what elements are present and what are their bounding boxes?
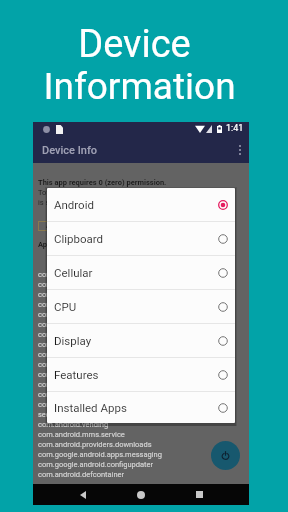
staticText: com.android.externalstorage: [38, 350, 134, 359]
staticText: Device Info: [42, 144, 98, 157]
staticText: Clipboard: [54, 232, 104, 245]
staticText: com.google.android.configupdater: [38, 460, 154, 469]
staticText: This app requires 0 (zero) permission.: [38, 178, 167, 187]
button[interactable]: Power: [211, 441, 240, 470]
staticText: Ar: [46, 222, 53, 230]
button[interactable]: Clipboard: [47, 222, 235, 255]
staticText: com.android.vending: [38, 420, 109, 429]
staticText: com.google.android.gms: [38, 300, 122, 309]
button[interactable]: Android: [47, 188, 235, 221]
button[interactable]: Ar: [39, 222, 60, 230]
staticText: com.android.providers.media: [38, 320, 136, 329]
staticText: com.android.providers.downloads: [38, 440, 152, 449]
staticText: com.android.cts.priv.ctsshim: [38, 270, 135, 279]
button[interactable]: CPU: [47, 290, 235, 323]
staticText: com.google.android.youtube: [38, 280, 134, 289]
staticText: com.android.mms: [38, 380, 100, 389]
button[interactable]: Home: [112, 484, 170, 505]
staticText: secure.systemui: [38, 410, 93, 419]
staticText: com.android.mms.service: [38, 430, 125, 439]
button[interactable]: Display: [47, 324, 235, 357]
staticText: com.android.htmlviewer: [38, 360, 119, 369]
staticText: is s: [38, 198, 50, 207]
staticText: com.android.providers.calendar: [38, 310, 144, 319]
staticText: com.android.wallpapercropper: [38, 330, 140, 339]
button[interactable]: Installed Apps: [47, 392, 235, 423]
staticText: 1:41: [226, 123, 244, 134]
staticText: com.android.defcontainer: [38, 470, 125, 479]
button[interactable]: Features: [47, 358, 235, 391]
staticText: com.android.providers.downloads: [38, 390, 152, 399]
staticText: com.android.quicksearchbox: [38, 370, 135, 379]
staticText: Android: [54, 198, 94, 211]
button[interactable]: Back: [54, 484, 112, 505]
staticText: Information: [43, 65, 236, 108]
staticText: App: [38, 240, 52, 249]
staticText: Cellular: [54, 266, 93, 279]
staticText: Tot: [38, 188, 49, 197]
staticText: Features: [54, 368, 99, 381]
button[interactable]: Cellular: [47, 256, 235, 289]
staticText: Device: [78, 22, 191, 67]
staticText: Display: [54, 334, 92, 347]
staticText: com.android.defcontainer: [38, 400, 125, 409]
button[interactable]: More options: [231, 141, 249, 159]
staticText: Installed Apps: [54, 401, 127, 414]
button[interactable]: Recent apps: [170, 484, 228, 505]
staticText: com.android.providers.telephony: [38, 290, 148, 299]
staticText: com.google.android.apps.messaging: [38, 450, 162, 459]
staticText: CPU: [54, 300, 77, 313]
staticText: com.android.documentsui: [38, 340, 126, 349]
